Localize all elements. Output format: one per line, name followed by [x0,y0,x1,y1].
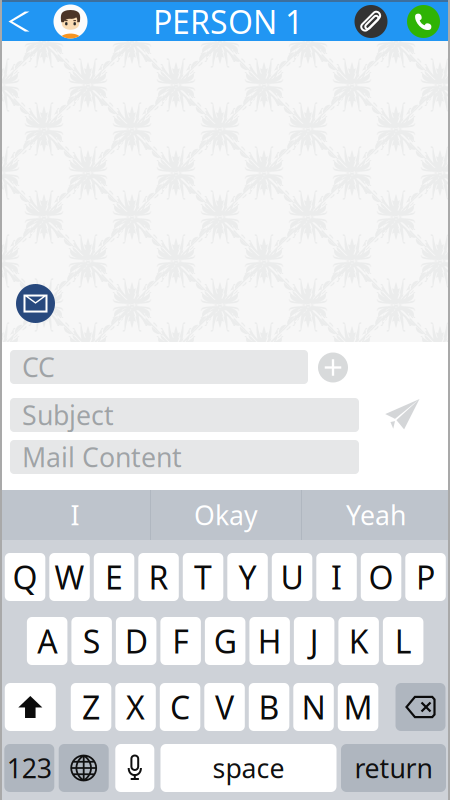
button[interactable]: J [294,617,334,665]
staticText: CC [22,349,55,385]
button[interactable]: space [160,744,336,792]
button[interactable]: Next keyboard [59,744,109,792]
button[interactable]: L [383,617,423,665]
button[interactable]: Okay [151,490,301,540]
staticText: I [331,556,342,598]
button[interactable]: H [249,617,290,665]
staticText: J [310,620,319,662]
button[interactable]: Yeah [302,490,450,540]
button[interactable]: return [341,744,446,792]
button[interactable]: T [183,553,223,601]
staticText: Yeah [346,497,406,533]
staticText: V [215,686,234,728]
staticText: Okay [194,497,258,533]
staticText: F [172,620,189,662]
staticText: S [83,620,101,662]
staticText: Subject [22,397,114,433]
staticText: PERSON 1 [153,0,303,43]
staticText: X [126,686,145,728]
button[interactable]: E [94,553,134,601]
button[interactable]: A [27,617,67,665]
button[interactable]: R [138,553,179,601]
staticText: E [105,556,123,598]
staticText: N [302,686,326,728]
button[interactable]: G [205,617,245,665]
staticText: W [54,556,84,598]
button[interactable]: Y [227,553,268,601]
button[interactable]: Delete [395,683,445,731]
button[interactable]: Add recipient [318,352,348,382]
staticText: 123 [7,750,52,786]
staticText: Y [239,556,257,598]
button[interactable]: Q [5,553,45,601]
button[interactable]: V [204,683,245,731]
staticText: R [149,556,169,598]
staticText: O [369,556,394,598]
staticText: Q [13,556,38,598]
staticText: Mail Content [22,439,182,475]
staticText: B [259,686,280,728]
staticText: H [258,620,282,662]
button[interactable]: I [0,490,150,540]
staticText: K [349,620,369,662]
button[interactable]: K [338,617,379,665]
button[interactable]: Z [71,683,111,731]
staticText: M [344,686,373,728]
staticText: U [281,556,304,598]
staticText: Z [82,686,100,728]
button[interactable]: Shift [5,683,56,731]
staticText: L [395,620,412,662]
button[interactable]: X [115,683,156,731]
staticText: G [214,620,237,662]
button[interactable]: M [338,683,378,731]
button[interactable]: Back [0,1,38,42]
staticText: I [70,497,79,533]
button[interactable]: Call [407,5,440,38]
button[interactable]: U [272,553,312,601]
button[interactable]: F [160,617,201,665]
staticText: space [212,750,284,786]
button[interactable]: P [405,553,446,601]
staticText: return [354,750,432,786]
button[interactable]: D [116,617,156,665]
button[interactable]: 123 [4,744,54,792]
staticText: T [194,556,212,598]
staticText: P [416,556,435,598]
button[interactable]: C [160,683,200,731]
button[interactable]: N [293,683,334,731]
button[interactable]: S [71,617,112,665]
staticText: A [37,620,57,662]
button[interactable]: Attach [354,5,387,38]
button[interactable]: Send [379,393,425,437]
button[interactable]: W [49,553,90,601]
button[interactable]: O [361,553,401,601]
staticText: C [170,686,190,728]
button[interactable]: I [316,553,357,601]
button[interactable]: Contact photo [53,4,87,38]
button[interactable]: Dictation [115,744,154,792]
button[interactable]: B [249,683,289,731]
staticText: D [125,620,148,662]
